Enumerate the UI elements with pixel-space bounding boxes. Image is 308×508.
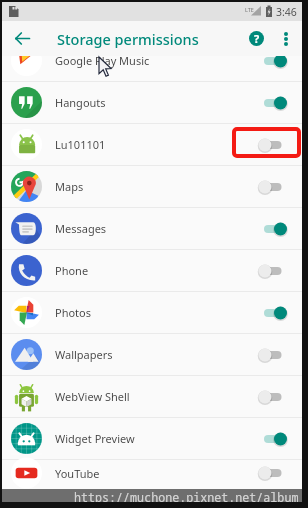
button[interactable]: Hangouts — [2, 82, 302, 123]
button[interactable]: YouTube — [2, 460, 302, 486]
staticText: Photos — [55, 305, 92, 320]
button[interactable]: Help — [240, 21, 272, 56]
staticText: https://muchone.pixnet.net/album — [74, 489, 299, 502]
button[interactable]: Lu101101 — [2, 124, 302, 165]
button[interactable]: Google Play Music — [2, 56, 302, 81]
button[interactable]: Widget Preview — [2, 418, 302, 459]
button[interactable]: WebView Shell — [2, 376, 302, 417]
staticText: Maps — [55, 179, 84, 194]
staticText: Wallpapers — [55, 347, 113, 362]
staticText: Lu101101 — [55, 137, 106, 152]
staticText: Messages — [55, 221, 107, 236]
staticText: ? — [254, 31, 260, 46]
staticText: LTE — [245, 6, 254, 13]
button[interactable]: Messages — [2, 208, 302, 249]
staticText: 3:46 — [276, 5, 297, 19]
button[interactable]: Phone — [2, 250, 302, 291]
staticText: Google Play Music — [55, 56, 150, 68]
button[interactable]: More options — [272, 21, 300, 56]
button[interactable]: Back — [2, 21, 42, 56]
staticText: Phone — [55, 263, 89, 278]
staticText: WebView Shell — [55, 389, 130, 404]
staticText: YouTube — [55, 466, 100, 481]
staticText: Storage permissions — [57, 29, 199, 49]
button[interactable]: Maps — [2, 166, 302, 207]
button[interactable]: Wallpapers — [2, 334, 302, 375]
staticText: Widget Preview — [55, 431, 135, 446]
staticText: Hangouts — [55, 95, 106, 110]
button[interactable]: Photos — [2, 292, 302, 333]
